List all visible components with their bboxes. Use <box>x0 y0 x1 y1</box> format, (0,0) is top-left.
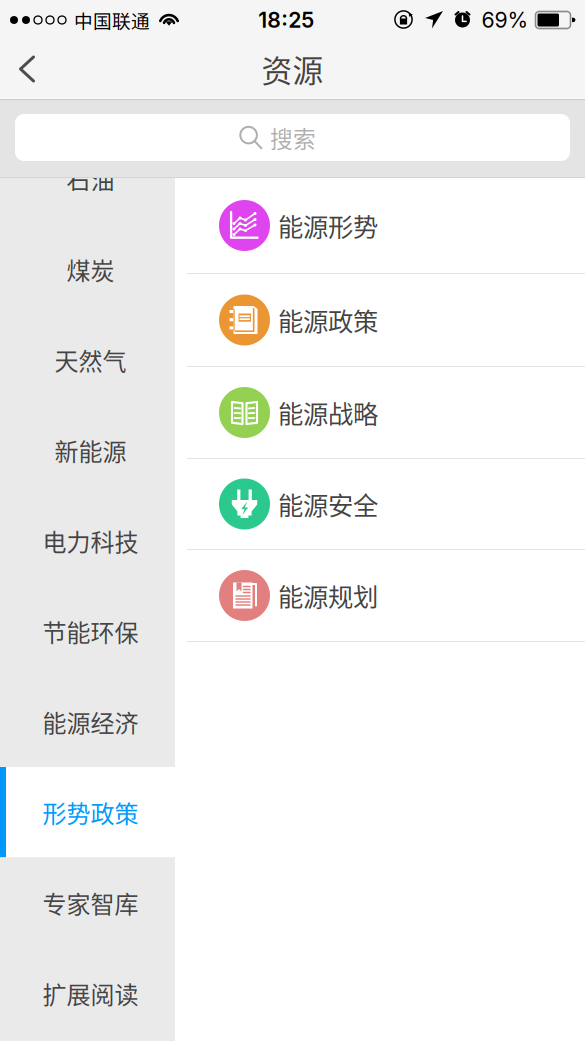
staticText: 能源经济 <box>42 704 138 739</box>
staticText: 能源形势 <box>278 207 378 244</box>
button[interactable]: 形势政策 <box>0 767 175 857</box>
staticText: 能源安全 <box>278 486 378 522</box>
button[interactable]: Search <box>15 114 570 161</box>
staticText: 能源战略 <box>278 394 378 431</box>
button[interactable]: 节能环保 <box>0 586 175 676</box>
button[interactable]: 天然气 <box>0 314 175 405</box>
button[interactable]: 专家智库 <box>0 857 175 948</box>
button[interactable]: 能源经济 <box>0 676 175 767</box>
button[interactable]: 能源战略 <box>175 367 585 459</box>
staticText: 18:25 <box>258 7 314 33</box>
button[interactable]: 石油 <box>0 133 175 224</box>
button[interactable]: 能源规划 <box>175 550 585 642</box>
staticText: 能源政策 <box>278 302 378 338</box>
staticText: 电力科技 <box>42 523 138 558</box>
staticText: 新能源 <box>54 433 126 468</box>
button[interactable]: 能源政策 <box>175 274 585 367</box>
staticText: 形势政策 <box>42 795 138 830</box>
staticText: 能源规划 <box>278 577 378 614</box>
staticText: 69% <box>481 7 528 33</box>
staticText: 天然气 <box>54 342 126 377</box>
button[interactable]: 新能源 <box>0 405 175 495</box>
staticText: 煤炭 <box>66 252 114 287</box>
staticText: 石油 <box>66 161 114 196</box>
staticText: 扩展阅读 <box>42 976 138 1011</box>
staticText: 资源 <box>261 47 323 91</box>
staticText: 搜索 <box>270 121 316 154</box>
staticText: 中国联通 <box>74 6 150 33</box>
button[interactable]: 能源形势 <box>175 178 585 274</box>
staticText: 专家智库 <box>42 885 138 920</box>
staticText: 节能环保 <box>42 614 138 649</box>
button[interactable]: 扩展阅读 <box>0 948 175 1038</box>
button[interactable]: 能源安全 <box>175 459 585 550</box>
button[interactable]: 煤炭 <box>0 224 175 314</box>
button[interactable]: 电力科技 <box>0 495 175 586</box>
button[interactable]: Back <box>0 40 64 98</box>
